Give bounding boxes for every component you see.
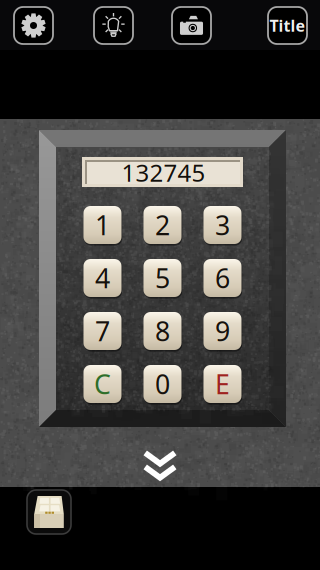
staticText: 3	[215, 207, 230, 243]
button[interactable]: 7	[83, 311, 122, 351]
staticText: 4	[95, 260, 110, 296]
button[interactable]: Item slot	[27, 490, 71, 534]
staticText: 9	[215, 313, 230, 349]
staticText: C	[94, 366, 111, 402]
button[interactable]: Camera	[172, 7, 211, 44]
staticText: 6	[215, 260, 230, 296]
button[interactable]: 8	[143, 311, 182, 351]
button[interactable]: 6	[203, 258, 242, 298]
staticText: 1	[95, 207, 110, 243]
button[interactable]: Settings	[14, 7, 53, 44]
staticText: 8	[155, 313, 170, 349]
staticText: 5	[155, 260, 170, 296]
staticText: 0	[155, 366, 170, 402]
staticText: Title	[269, 15, 305, 36]
staticText: E	[215, 366, 230, 402]
button[interactable]: C	[83, 364, 122, 404]
button[interactable]: 9	[203, 311, 242, 351]
button[interactable]: 4	[83, 258, 122, 298]
button[interactable]: Lights	[94, 7, 133, 44]
staticText: 2	[155, 207, 170, 243]
staticText: 132745	[121, 157, 205, 188]
button[interactable]: 3	[203, 205, 242, 245]
button[interactable]: E	[203, 364, 242, 404]
button[interactable]: 1	[83, 205, 122, 245]
button[interactable]: 5	[143, 258, 182, 298]
button[interactable]: Title	[268, 7, 307, 44]
button[interactable]: 2	[143, 205, 182, 245]
staticText: 7	[95, 313, 110, 349]
button[interactable]: 0	[143, 364, 182, 404]
